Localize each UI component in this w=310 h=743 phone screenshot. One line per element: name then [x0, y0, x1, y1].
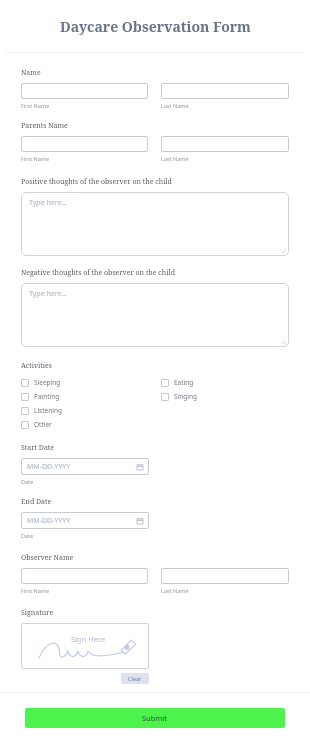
button[interactable]: Other — [21, 420, 52, 429]
button[interactable] — [21, 568, 148, 584]
button[interactable]: Type here... — [21, 283, 289, 347]
staticText: Date — [21, 478, 34, 485]
staticText: Last Name — [161, 155, 189, 162]
staticText: First Name — [21, 102, 50, 109]
button[interactable]: Submit — [25, 708, 285, 728]
button[interactable]: MM-DD-YYYY — [21, 512, 149, 529]
staticText: Other — [34, 420, 52, 429]
button[interactable]: Type here... — [21, 192, 289, 256]
button[interactable]: Signature pad — [21, 623, 149, 669]
other: Open calendar — [137, 464, 143, 470]
button[interactable] — [21, 136, 148, 152]
other: Open calendar — [137, 518, 143, 524]
staticText: Activities — [21, 361, 52, 371]
staticText: End Date — [21, 497, 52, 507]
staticText: Clear — [128, 675, 142, 682]
staticText: Last Name — [161, 587, 189, 594]
button[interactable]: Sleeping — [21, 378, 61, 387]
button[interactable]: Listening — [21, 406, 62, 415]
staticText: Singing — [174, 392, 197, 401]
staticText: Sleeping — [34, 378, 61, 387]
staticText: Name — [21, 68, 41, 78]
staticText: Last Name — [161, 102, 189, 109]
staticText: First Name — [21, 155, 50, 162]
staticText: First Name — [21, 587, 50, 594]
button[interactable] — [161, 136, 289, 152]
button[interactable]: Singing — [161, 392, 197, 401]
staticText: MM-DD-YYYY — [27, 516, 71, 526]
staticText: Positive thoughts of the observer on the… — [21, 177, 172, 187]
button[interactable]: Eating — [161, 378, 194, 387]
button[interactable]: Clear — [121, 673, 149, 684]
button[interactable] — [161, 83, 289, 99]
button[interactable] — [21, 83, 148, 99]
staticText: MM-DD-YYYY — [27, 462, 71, 472]
staticText: Start Date — [21, 443, 55, 453]
staticText: Painting — [34, 392, 60, 401]
staticText: Signature — [21, 608, 54, 618]
staticText: Listening — [34, 406, 62, 415]
staticText: Observer Name — [21, 553, 74, 563]
button[interactable]: MM-DD-YYYY — [21, 458, 149, 475]
staticText: Negative thoughts of the observer on the… — [21, 268, 175, 278]
staticText: Sign Here — [71, 634, 106, 644]
staticText: Submit — [142, 713, 168, 723]
staticText: Parents Name — [21, 121, 68, 131]
staticText: Date — [21, 532, 34, 539]
staticText: Type here... — [29, 289, 67, 299]
staticText: Daycare Observation Form — [60, 17, 251, 36]
button[interactable]: Painting — [21, 392, 60, 401]
staticText: Type here... — [29, 198, 67, 208]
button[interactable] — [161, 568, 289, 584]
staticText: Eating — [174, 378, 194, 387]
